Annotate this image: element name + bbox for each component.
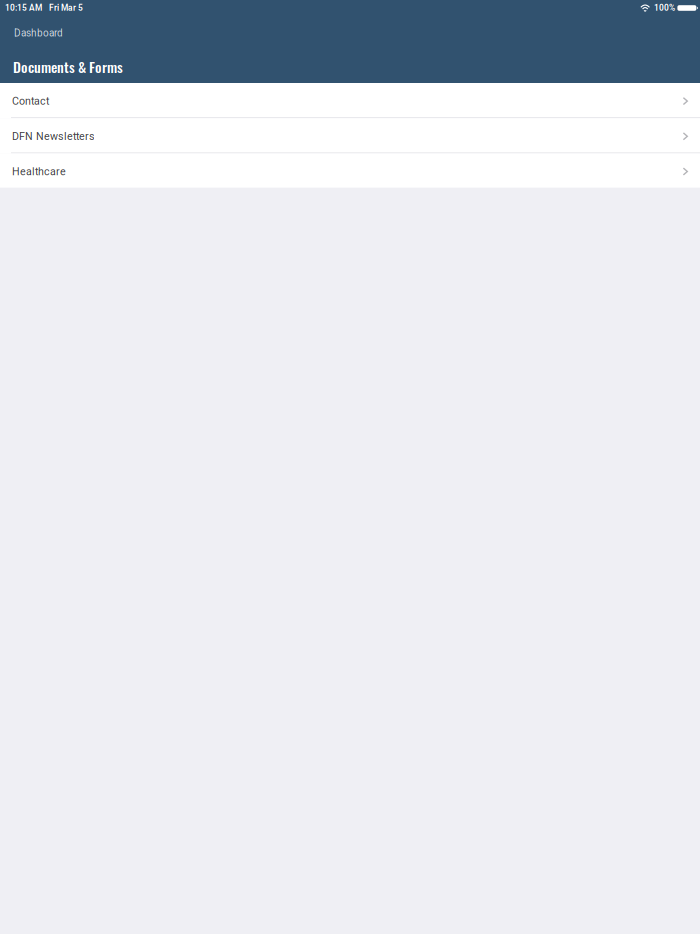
staticText: Contact [12,95,49,107]
staticText: Healthcare [12,165,66,178]
staticText: Documents & Forms [13,56,123,77]
button[interactable]: Dashboard [0,21,73,40]
staticText: Dashboard [14,27,63,39]
staticText: Fri Mar 5 [49,3,83,13]
button[interactable]: DFN Newsletters [0,118,700,153]
staticText: 10:15 AM [5,3,42,13]
staticText: DFN Newsletters [12,130,95,142]
button[interactable]: Contact [0,83,700,118]
staticText: 100% [654,3,675,13]
button[interactable]: Healthcare [0,153,700,188]
